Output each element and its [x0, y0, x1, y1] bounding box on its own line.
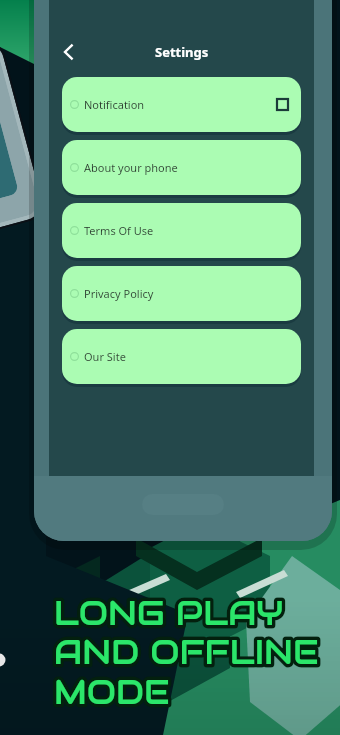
- button[interactable]: Our Site: [62, 329, 301, 384]
- staticText: Our Site: [84, 349, 126, 364]
- staticText: Privacy Policy: [84, 286, 154, 301]
- button[interactable]: Terms Of Use: [62, 203, 301, 258]
- staticText: Settings: [155, 43, 209, 61]
- staticText: Terms Of Use: [84, 223, 154, 238]
- button[interactable]: Back: [53, 36, 85, 68]
- button[interactable]: Notification: [62, 77, 301, 132]
- button[interactable]: About your phone: [62, 140, 301, 195]
- staticText: Notification: [84, 97, 145, 112]
- button[interactable]: Privacy Policy: [62, 266, 301, 321]
- staticText: About your phone: [84, 160, 178, 175]
